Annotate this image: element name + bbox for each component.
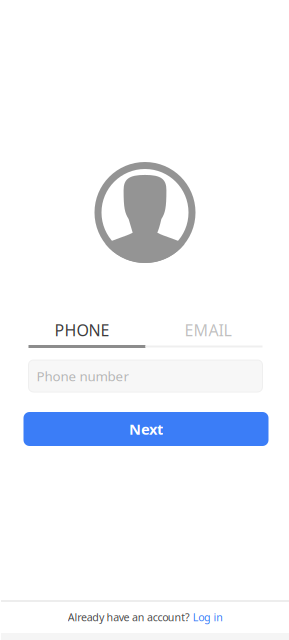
staticText: Already have an account? xyxy=(68,610,193,624)
staticText: Phone number xyxy=(36,367,129,385)
button[interactable]: Next xyxy=(23,412,268,446)
staticText: EMAIL xyxy=(184,319,231,341)
button[interactable]: PHONE xyxy=(28,316,145,344)
button[interactable]: EMAIL xyxy=(145,316,262,344)
staticText: PHONE xyxy=(54,319,109,341)
button[interactable]: Already have an account? xyxy=(1,602,289,633)
staticText: Log in xyxy=(193,610,223,624)
staticText: Next xyxy=(129,419,163,439)
